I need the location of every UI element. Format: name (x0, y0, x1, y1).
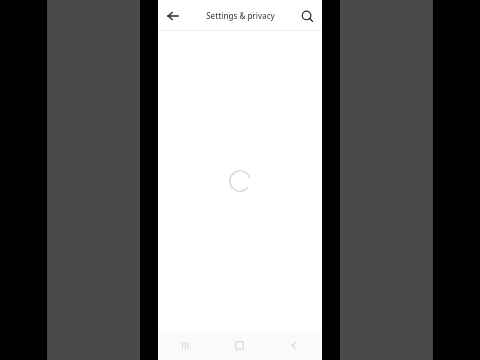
button[interactable]: Home (212, 331, 267, 360)
button[interactable]: Search (296, 5, 318, 27)
button[interactable]: Back (162, 5, 184, 27)
button[interactable]: Recents (158, 331, 212, 360)
staticText: Settings & privacy (206, 10, 275, 21)
